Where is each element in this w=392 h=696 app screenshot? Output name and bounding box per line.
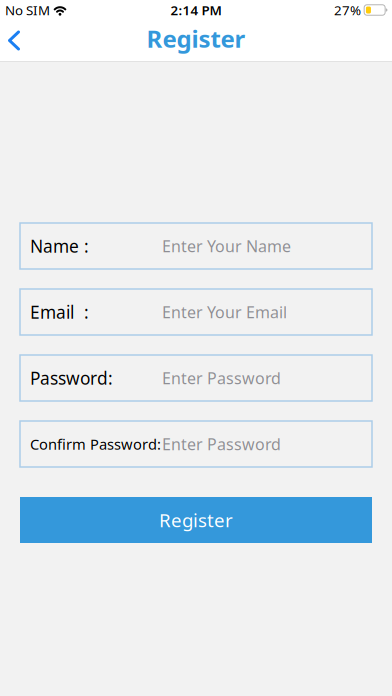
- staticText: 2:14 PM: [170, 1, 221, 19]
- staticText: No SIM: [5, 1, 50, 19]
- staticText: Register: [146, 23, 245, 54]
- button[interactable]: Register: [20, 497, 372, 543]
- staticText: 27%: [334, 1, 361, 19]
- button[interactable]: Email :: [20, 289, 372, 335]
- button[interactable]: Name :: [20, 223, 372, 269]
- button[interactable]: Back: [0, 20, 30, 60]
- staticText: Email :: [30, 300, 89, 323]
- staticText: Register: [159, 508, 233, 532]
- staticText: Name :: [30, 234, 89, 257]
- staticText: Enter Your Name: [162, 235, 291, 257]
- button[interactable]: Password:: [20, 355, 372, 401]
- staticText: Confirm Password:: [30, 434, 161, 454]
- staticText: Enter Password: [162, 367, 281, 389]
- staticText: Password:: [30, 366, 113, 389]
- button[interactable]: Confirm Password:: [20, 421, 372, 467]
- staticText: Enter Your Email: [162, 301, 287, 323]
- staticText: Enter Password: [162, 433, 281, 455]
